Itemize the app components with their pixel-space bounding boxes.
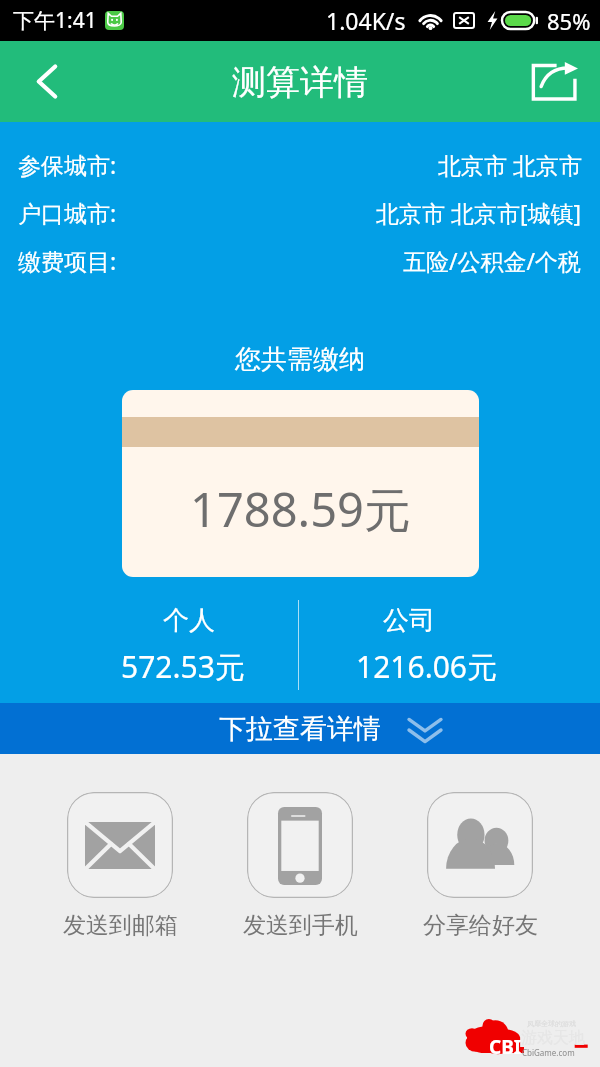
button[interactable]: 发送到邮箱	[30, 792, 210, 940]
staticText: 个人	[163, 604, 215, 637]
staticText: 分享给好友	[423, 911, 538, 940]
staticText: 您共需缴纳	[0, 343, 600, 376]
button[interactable]: 下拉查看详情	[0, 703, 600, 754]
staticText: 五险/公积金/个税	[403, 245, 582, 276]
staticText: 下拉查看详情	[219, 712, 381, 746]
staticText: 下午1:41	[13, 6, 97, 35]
staticText: 1216.06元	[356, 646, 497, 687]
staticText: 测算详情	[232, 61, 368, 104]
staticText: 1788.59元	[190, 477, 411, 541]
staticText: CBI	[489, 1034, 522, 1060]
button[interactable]: 发送到手机	[210, 792, 390, 940]
staticText: 风靡全球的游戏	[527, 1019, 576, 1028]
staticText: 572.53元	[121, 646, 245, 687]
button[interactable]: Share	[514, 41, 600, 122]
staticText: CbiGame.com	[522, 1047, 575, 1058]
staticText: 北京市 北京市[城镇]	[376, 197, 582, 228]
staticText: 发送到手机	[243, 911, 358, 940]
staticText: 参保城市:	[18, 149, 117, 180]
staticText: 缴费项目:	[18, 245, 117, 276]
staticText: 发送到邮箱	[63, 911, 178, 940]
staticText: 北京市 北京市	[438, 149, 582, 180]
staticText: 户口城市:	[18, 197, 117, 228]
button[interactable]: Back	[0, 41, 76, 122]
staticText: 1.04K/s	[326, 5, 406, 36]
staticText: 游戏天地	[521, 1028, 585, 1048]
button[interactable]: 分享给好友	[390, 792, 570, 940]
staticText: 85%	[547, 6, 591, 36]
staticText: 公司	[383, 604, 435, 637]
